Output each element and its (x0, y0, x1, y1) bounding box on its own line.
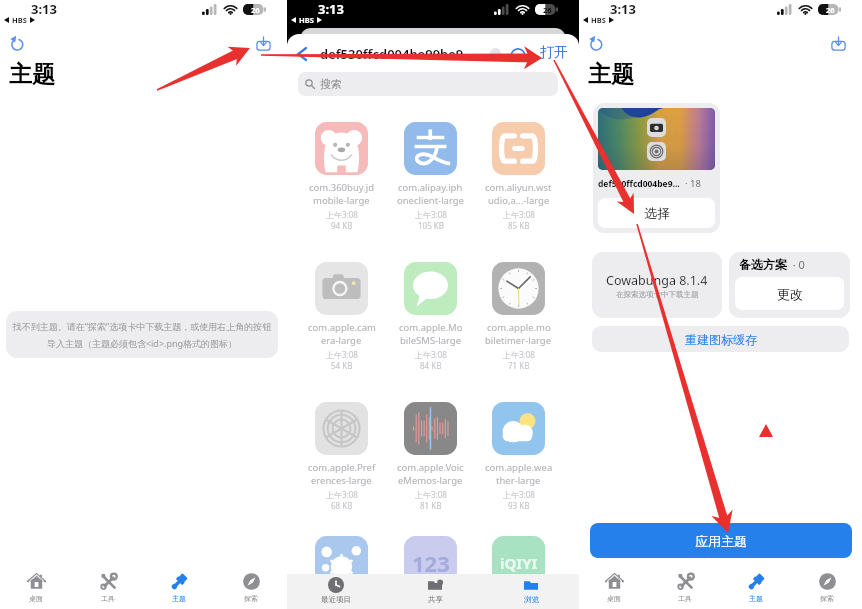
button[interactable]: 应用主题 (590, 523, 852, 558)
button[interactable]: Menu (511, 46, 525, 60)
staticText: 打开 (540, 44, 568, 62)
staticText: 3:13 (610, 0, 636, 18)
staticText: 桌面 (29, 594, 43, 603)
staticText: 54 KB (331, 360, 353, 371)
staticText: 上午3:08 (326, 209, 358, 220)
button[interactable]: 桌面 (6, 572, 66, 603)
staticText: com.alipay.iph (398, 181, 463, 194)
button[interactable]: 浏览 (496, 577, 566, 604)
staticText: 应用主题 (695, 533, 747, 549)
staticText: mobile-large (313, 194, 370, 207)
staticText: biletimer-large (485, 334, 552, 347)
staticText: era-large (321, 334, 362, 347)
staticText: 上午3:08 (503, 209, 535, 220)
staticText: ther-large (496, 474, 541, 487)
staticText: 上午3:08 (415, 209, 447, 220)
staticText: 93 KB (508, 500, 530, 511)
staticText: 搜索 (320, 77, 342, 91)
button[interactable]: 打开 (540, 44, 568, 62)
staticText: 3:13 (31, 0, 57, 18)
staticText: iQIYI (500, 553, 538, 573)
staticText: HBS (591, 15, 606, 25)
staticText: 85 KB (508, 220, 530, 231)
button[interactable]: 主题 (726, 572, 786, 603)
staticText: 上午3:08 (503, 349, 535, 360)
button[interactable]: Import theme (251, 31, 275, 55)
staticText: 84 KB (420, 360, 442, 371)
staticText: 更改 (777, 286, 803, 302)
button[interactable]: 工具 (78, 572, 138, 603)
button[interactable]: com.apple.mo (476, 262, 561, 371)
staticText: Cowabunga 8.1.4 (606, 272, 708, 289)
staticText: 123 (412, 548, 450, 578)
staticText: bileSMS-large (400, 334, 462, 347)
staticText: com.aliyun.wst (485, 181, 552, 194)
staticText: · 18 (680, 177, 701, 190)
staticText: HBS (299, 15, 314, 25)
staticText: 上午3:08 (326, 489, 358, 500)
button[interactable]: com.alipay.iph (388, 122, 473, 231)
button[interactable]: 工具 (655, 572, 715, 603)
button[interactable]: 共享 (400, 577, 470, 604)
staticText: 26 (543, 5, 552, 15)
button[interactable]: 搜索 (298, 72, 558, 96)
staticText: 重建图标缓存 (685, 332, 757, 347)
staticText: com.apple.Pref (308, 461, 376, 474)
staticText: erences-large (311, 474, 372, 487)
staticText: 主题 (588, 60, 634, 89)
button[interactable]: 选择 (598, 198, 715, 228)
button[interactable]: com.apple.Mo (388, 262, 473, 371)
staticText: 主题 (9, 60, 55, 89)
button[interactable]: 主题 (149, 572, 209, 603)
button[interactable]: Back (291, 43, 313, 65)
staticText: 71 KB (508, 360, 530, 371)
staticText: com.apple.Voic (397, 461, 464, 474)
staticText: 上午3:08 (415, 489, 447, 500)
staticText: 上午3:08 (326, 349, 358, 360)
staticText: 选择 (644, 205, 670, 221)
button[interactable]: 最近项目 (301, 577, 371, 604)
button[interactable]: Import theme (826, 31, 850, 55)
button[interactable]: 重建图标缓存 (592, 326, 849, 352)
button[interactable]: com.apple.cam (299, 262, 384, 371)
staticText: 探索 (820, 594, 834, 603)
staticText: def530ffcd004be99be9 (320, 45, 464, 63)
button[interactable]: def530ffcd004be9... (593, 103, 720, 233)
staticText: 68 KB (331, 500, 353, 511)
button[interactable]: iQIYI (492, 536, 545, 589)
button[interactable]: 更改 (735, 277, 844, 310)
button[interactable]: 探索 (221, 572, 281, 603)
staticText: 105 KB (418, 220, 444, 231)
staticText: udio,a...-large (488, 194, 550, 207)
button[interactable]: com.aliyun.wst (476, 122, 561, 231)
staticText: 26 (251, 5, 260, 15)
button[interactable]: 123 (404, 536, 457, 589)
staticText: 主题 (749, 594, 763, 603)
button[interactable]: Refresh (584, 31, 608, 55)
staticText: 3:13 (318, 0, 344, 18)
staticText: com.apple.Mo (399, 321, 463, 334)
button[interactable]: com.apple.Pref (299, 402, 384, 511)
button[interactable]: 探索 (797, 572, 857, 603)
staticText: HBS (12, 15, 27, 25)
staticText: 最近项目 (321, 595, 351, 604)
staticText: com.apple.wea (485, 461, 553, 474)
staticText: 探索 (244, 594, 258, 603)
button[interactable]: Cowabunga 8.1.4 (592, 252, 722, 318)
button[interactable]: com.360buy.jd (299, 122, 384, 231)
button[interactable] (315, 536, 368, 589)
staticText: 工具 (678, 594, 692, 603)
staticText: 94 KB (331, 220, 353, 231)
button[interactable]: com.apple.wea (476, 402, 561, 511)
staticText: 上午3:08 (503, 489, 535, 500)
staticText: 81 KB (420, 500, 442, 511)
staticText: 上午3:08 (415, 349, 447, 360)
button[interactable]: com.apple.Voic (388, 402, 473, 511)
staticText: 共享 (428, 595, 443, 604)
staticText: 找不到主题。请在“探索”选项卡中下载主题，或使用右上角的按钮导入主题（主题必须包… (10, 320, 274, 349)
staticText: com.360buy.jd (309, 181, 375, 194)
button[interactable]: Refresh (5, 31, 29, 55)
button[interactable]: 桌面 (584, 572, 644, 603)
staticText: com.apple.cam (308, 321, 376, 334)
staticText: oneclient-large (397, 194, 464, 207)
